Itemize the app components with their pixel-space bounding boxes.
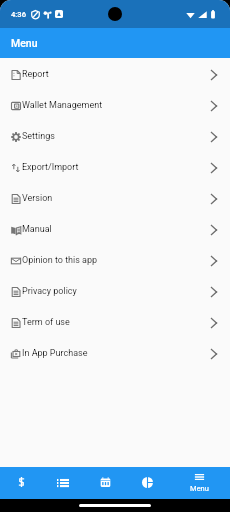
staticText: 4:36 bbox=[11, 10, 26, 19]
button[interactable]: Opinion to this app bbox=[0, 245, 230, 276]
button[interactable]: Export/Import bbox=[0, 152, 230, 183]
button[interactable]: Manual bbox=[0, 214, 230, 245]
button[interactable]: Charts bbox=[126, 467, 168, 499]
staticText: Wallet Management bbox=[22, 100, 103, 111]
staticText: Settings bbox=[22, 131, 55, 142]
staticText: Export/Import bbox=[22, 162, 79, 173]
button[interactable]: Transactions bbox=[42, 467, 84, 499]
button[interactable]: Wallet Management bbox=[0, 90, 230, 121]
staticText: Opinion to this app bbox=[22, 255, 98, 266]
staticText: Menu bbox=[11, 37, 38, 49]
button[interactable]: Calendar bbox=[84, 467, 126, 499]
button[interactable]: Term of use bbox=[0, 307, 230, 338]
staticText: Menu bbox=[190, 484, 209, 493]
staticText: Version bbox=[22, 193, 53, 204]
button[interactable]: Privacy policy bbox=[0, 276, 230, 307]
button[interactable]: Version bbox=[0, 183, 230, 214]
staticText: Term of use bbox=[22, 317, 70, 328]
staticText: Manual bbox=[22, 224, 52, 235]
button[interactable]: Money bbox=[0, 467, 42, 499]
button[interactable]: Menu bbox=[168, 467, 230, 499]
button[interactable]: In App Purchase bbox=[0, 338, 230, 369]
staticText: Privacy policy bbox=[22, 286, 77, 297]
button[interactable]: Settings bbox=[0, 121, 230, 152]
staticText: In App Purchase bbox=[22, 348, 88, 359]
button[interactable]: Report bbox=[0, 59, 230, 90]
staticText: Report bbox=[22, 69, 49, 80]
